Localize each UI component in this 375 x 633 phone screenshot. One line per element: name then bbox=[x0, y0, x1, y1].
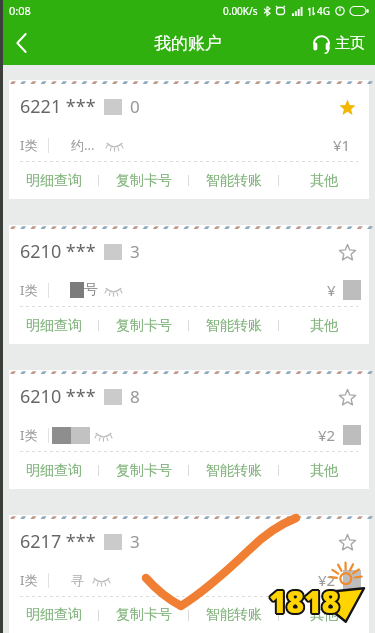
button[interactable]: 其他 bbox=[279, 307, 369, 344]
button[interactable]: 6210 *** bbox=[9, 370, 369, 489]
staticText: 1818 bbox=[269, 581, 340, 622]
staticText: ¥2 bbox=[318, 570, 336, 590]
staticText: 1818 bbox=[267, 582, 338, 623]
button[interactable]: 6221 *** bbox=[9, 80, 369, 199]
staticText: 6210 *** bbox=[20, 239, 96, 264]
staticText: 1818 bbox=[271, 581, 342, 622]
staticText: 其他 bbox=[310, 172, 338, 190]
staticText: 6210 *** bbox=[20, 384, 96, 409]
button[interactable]: 其他 bbox=[279, 452, 369, 489]
staticText: 号 bbox=[84, 281, 98, 299]
button[interactable]: 6217 *** bbox=[9, 515, 369, 633]
staticText: 1818 bbox=[270, 580, 341, 621]
staticText: 8 bbox=[130, 385, 140, 408]
staticText: 3 bbox=[130, 530, 140, 553]
button[interactable]: Favorite bbox=[334, 239, 360, 265]
staticText: I类 bbox=[20, 136, 38, 154]
staticText: 1818 bbox=[268, 581, 339, 622]
staticText: 1818 bbox=[268, 582, 339, 623]
staticText: I类 bbox=[20, 281, 38, 299]
button[interactable]: 明细查询 bbox=[9, 452, 99, 489]
staticText: 1818 bbox=[270, 581, 341, 622]
staticText: 0 bbox=[130, 95, 140, 118]
staticText: 1818 bbox=[270, 582, 341, 623]
staticText: 约... bbox=[71, 136, 95, 154]
staticText: 复制卡号 bbox=[116, 606, 172, 624]
button[interactable]: 复制卡号 bbox=[99, 307, 189, 344]
staticText: 1818 bbox=[268, 583, 339, 624]
staticText: 1818 bbox=[268, 579, 339, 620]
button[interactable]: Favorite bbox=[334, 529, 360, 555]
staticText: 1818 bbox=[271, 582, 342, 623]
staticText: 智能转账 bbox=[206, 462, 262, 480]
button[interactable]: 明细查询 bbox=[9, 597, 99, 633]
staticText: 其他 bbox=[310, 317, 338, 335]
button[interactable]: 复制卡号 bbox=[99, 452, 189, 489]
button[interactable]: 6210 *** bbox=[9, 225, 369, 344]
staticText: 主页 bbox=[335, 34, 365, 53]
staticText: 1818 bbox=[268, 580, 339, 621]
button[interactable]: 其他 bbox=[279, 162, 369, 199]
button[interactable]: 智能转账 bbox=[189, 452, 279, 489]
staticText: 明细查询 bbox=[26, 317, 82, 335]
staticText: 1818 bbox=[267, 580, 338, 621]
staticText: 其他 bbox=[310, 462, 338, 480]
staticText: 其他 bbox=[310, 606, 338, 624]
button[interactable]: 智能转账 bbox=[189, 307, 279, 344]
staticText: 智能转账 bbox=[206, 317, 262, 335]
staticText: 1818 bbox=[269, 580, 340, 621]
button[interactable]: 复制卡号 bbox=[99, 162, 189, 199]
staticText: 智能转账 bbox=[206, 606, 262, 624]
staticText: 3 bbox=[130, 240, 140, 263]
button[interactable]: Back bbox=[0, 21, 42, 65]
staticText: 1818 bbox=[267, 581, 338, 622]
button[interactable]: 智能转账 bbox=[189, 162, 279, 199]
staticText: 1818 bbox=[269, 582, 340, 623]
button[interactable]: 其他 bbox=[279, 597, 369, 633]
staticText: 寻 bbox=[71, 572, 84, 588]
staticText: 1818 bbox=[271, 580, 342, 621]
staticText: 复制卡号 bbox=[116, 462, 172, 480]
staticText: 0.00K/s bbox=[223, 4, 258, 18]
staticText: 4G bbox=[317, 4, 330, 18]
staticText: 明细查询 bbox=[26, 606, 82, 624]
button[interactable]: 复制卡号 bbox=[99, 597, 189, 633]
button[interactable]: 智能转账 bbox=[189, 597, 279, 633]
staticText: 明细查询 bbox=[26, 462, 82, 480]
staticText: I类 bbox=[20, 426, 38, 444]
button[interactable]: Favorite bbox=[334, 384, 360, 410]
staticText: ¥2 bbox=[318, 425, 336, 445]
staticText: 我的账户 bbox=[154, 33, 222, 54]
staticText: 1818 bbox=[270, 579, 341, 620]
button[interactable]: 主页 bbox=[312, 21, 365, 65]
staticText: 智能转账 bbox=[206, 172, 262, 190]
staticText: 0:08 bbox=[9, 3, 31, 18]
button[interactable]: 明细查询 bbox=[9, 307, 99, 344]
staticText: ¥1 bbox=[333, 135, 351, 155]
staticText: 复制卡号 bbox=[116, 172, 172, 190]
staticText: ¥ bbox=[327, 280, 336, 300]
staticText: 明细查询 bbox=[26, 172, 82, 190]
staticText: 复制卡号 bbox=[116, 317, 172, 335]
staticText: 1818 bbox=[269, 579, 340, 620]
staticText: 1818 bbox=[270, 583, 341, 624]
staticText: 1818 bbox=[269, 583, 340, 624]
staticText: I类 bbox=[20, 571, 38, 589]
staticText: 6217 *** bbox=[20, 529, 96, 554]
button[interactable]: 明细查询 bbox=[9, 162, 99, 199]
staticText: 6221 *** bbox=[20, 94, 96, 119]
button[interactable]: Favorite bbox=[334, 94, 360, 120]
